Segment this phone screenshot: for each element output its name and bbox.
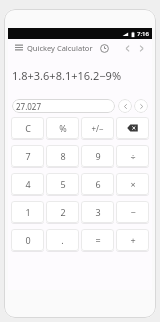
button[interactable]: 4 [11,173,44,195]
button[interactable]: = [81,229,114,251]
staticText: 0 [25,234,31,246]
button[interactable]: . [46,229,79,251]
button[interactable]: 2 [46,201,79,223]
staticText: + [130,234,136,246]
button[interactable]: 3 [81,201,114,223]
button[interactable]: Previous [120,41,134,55]
button[interactable]: × [116,173,149,195]
button[interactable]: 9 [81,145,114,167]
staticText: % [59,122,67,134]
staticText: 3 [95,206,101,218]
staticText: × [130,178,136,190]
staticText: = [95,234,101,246]
staticText: 8 [60,150,66,162]
button[interactable]: % [46,117,79,139]
staticText: 27.027 [16,101,42,112]
staticText: +/− [91,123,104,134]
button[interactable]: Next result [134,99,148,113]
button[interactable]: − [116,201,149,223]
staticText: 7:16 [137,30,149,38]
staticText: 9 [95,150,101,162]
button[interactable]: 1 [11,201,44,223]
staticText: 1 [25,206,31,218]
button[interactable]: ÷ [116,145,149,167]
button[interactable]: Next [134,41,148,55]
button[interactable]: Previous result [118,99,132,113]
button[interactable]: 0 [11,229,44,251]
button[interactable]: 27.027 [12,99,115,113]
button[interactable]: History [97,41,111,55]
staticText: − [130,206,136,218]
staticText: C [25,122,31,134]
button[interactable]: 7 [11,145,44,167]
staticText: 1.8+3.6+8.1+16.2−9% [12,68,122,83]
staticText: 2 [60,206,66,218]
button[interactable]: 8 [46,145,79,167]
button[interactable]: Backspace [116,117,149,139]
button[interactable]: Menu [12,41,25,54]
staticText: Quickey Calculator [27,43,93,53]
button[interactable]: +/− [81,117,114,139]
staticText: ÷ [130,150,136,162]
staticText: 5 [60,178,66,190]
staticText: 6 [95,178,101,190]
button[interactable]: + [116,229,149,251]
staticText: . [61,234,64,246]
button[interactable]: C [11,117,44,139]
staticText: 7 [25,150,31,162]
button[interactable]: 6 [81,173,114,195]
staticText: 4 [25,178,31,190]
button[interactable]: 5 [46,173,79,195]
